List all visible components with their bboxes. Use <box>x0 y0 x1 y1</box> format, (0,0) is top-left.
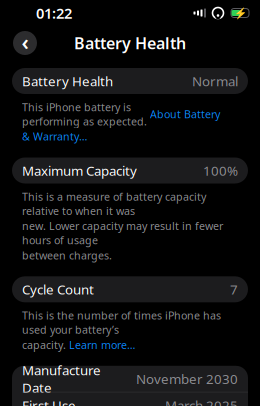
button[interactable]: Back <box>10 28 40 58</box>
staticText: Normal <box>192 72 238 90</box>
staticText: Maximum Capacity <box>22 162 137 179</box>
staticText: ‹ <box>21 28 28 56</box>
staticText: This iPhone battery is performing as exp… <box>22 100 150 128</box>
staticText: between charges. <box>22 248 112 262</box>
staticText: First Use <box>22 396 76 406</box>
staticText: 01:22 <box>36 3 72 23</box>
staticText: Cycle Count <box>22 280 94 298</box>
staticText: March 2025 <box>165 396 238 406</box>
staticText: capacity. <box>22 338 69 352</box>
staticText: Manufacture Date <box>22 361 101 396</box>
staticText: 100% <box>203 162 238 179</box>
button[interactable]: Manufacture Date <box>12 366 248 392</box>
button[interactable]: Battery Health <box>0 68 260 94</box>
staticText: Battery Health <box>74 32 186 54</box>
staticText: ⚡ <box>233 7 246 19</box>
staticText: About Battery <box>150 107 220 121</box>
button[interactable]: Cycle Count <box>0 276 260 302</box>
staticText: new. Lower capacity may result in fewer … <box>22 219 223 247</box>
button[interactable]: First Use <box>12 392 248 406</box>
staticText: November 2030 <box>136 370 238 388</box>
staticText: This is a measure of battery capacity re… <box>22 189 206 218</box>
staticText: Battery Health <box>22 72 113 90</box>
staticText: Learn more… <box>69 338 135 352</box>
staticText: & Warranty… <box>22 129 87 143</box>
staticText: 7 <box>230 280 238 298</box>
button[interactable]: Maximum Capacity <box>0 157 260 183</box>
staticText: This is the number of times iPhone has u… <box>22 308 221 337</box>
